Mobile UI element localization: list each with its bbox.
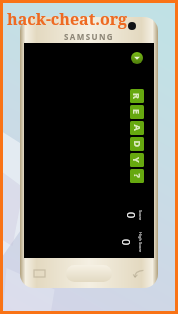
button[interactable]: Y — [131, 154, 143, 166]
button[interactable]: D — [131, 138, 143, 150]
staticText: hack-cheat.org — [7, 8, 128, 30]
staticText: Y — [131, 157, 143, 163]
staticText: R — [131, 93, 143, 99]
staticText: 0 — [119, 239, 134, 246]
button[interactable]: E — [131, 106, 143, 118]
button[interactable]: A — [131, 122, 143, 134]
button[interactable]: R — [131, 90, 143, 102]
staticText: A — [131, 124, 143, 131]
button[interactable]: Menu — [131, 52, 143, 64]
staticText: 0 — [124, 212, 139, 219]
staticText: ? — [131, 173, 143, 178]
button[interactable]: Recents — [34, 270, 45, 277]
button[interactable]: ? — [131, 170, 143, 182]
staticText: D — [131, 140, 143, 147]
staticText: High Score — [138, 232, 143, 253]
staticText: SAMSUNG — [64, 31, 115, 42]
button[interactable]: Back — [133, 269, 144, 278]
staticText: E — [131, 109, 143, 115]
button[interactable]: Home — [66, 265, 112, 282]
staticText: Score — [138, 210, 143, 221]
